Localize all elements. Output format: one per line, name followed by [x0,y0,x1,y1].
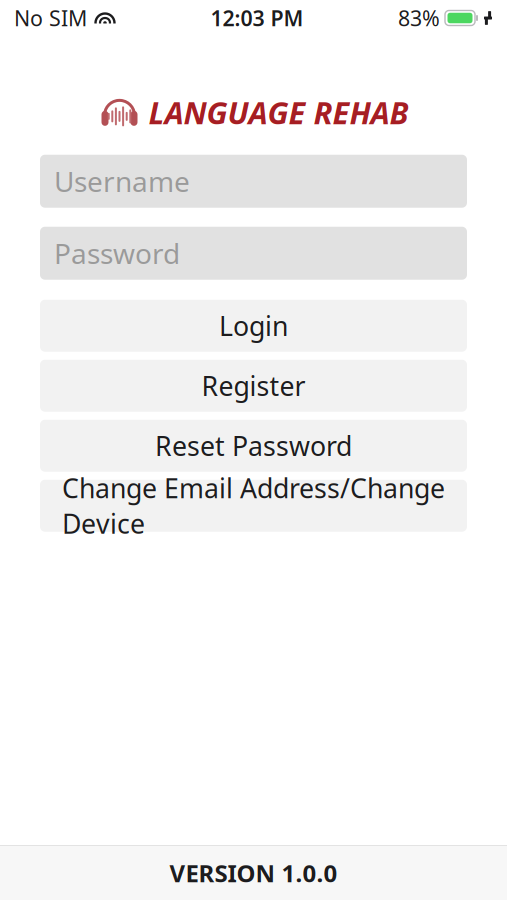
staticText: Change Email Address/Change Device [62,470,445,541]
staticText: 12:03 PM [210,4,303,32]
staticText: Username [54,163,190,200]
button[interactable]: Reset Password [40,420,467,472]
staticText: Login [219,308,288,343]
staticText: Reset Password [155,428,352,463]
staticText: Password [54,235,180,272]
button[interactable]: Change Email Address/Change Device [40,480,467,532]
button[interactable]: Register [40,360,467,412]
staticText: LANGUAGE REHAB [148,92,408,133]
staticText: 83% [398,4,440,32]
staticText: Register [201,368,305,403]
staticText: VERSION 1.0.0 [169,857,337,889]
staticText: No SIM [14,4,87,32]
button[interactable]: Login [40,300,467,352]
